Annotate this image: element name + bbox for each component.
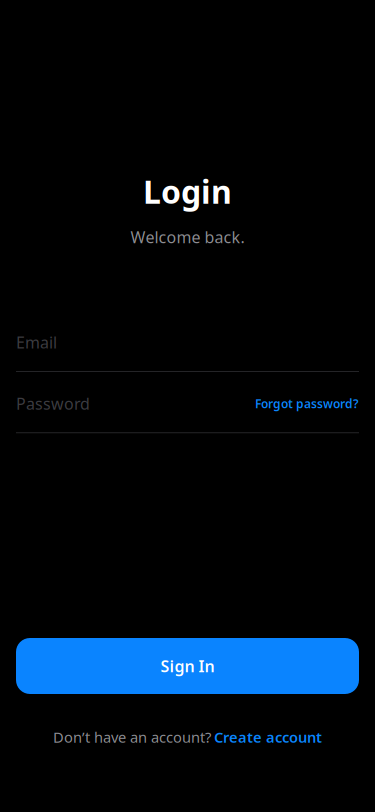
button[interactable]: Password xyxy=(16,393,359,433)
staticText: Welcome back. xyxy=(130,226,244,248)
staticText: Password xyxy=(16,393,90,414)
staticText: Login xyxy=(143,170,232,212)
button[interactable]: Create account xyxy=(214,727,322,747)
button[interactable]: Sign In xyxy=(16,638,359,694)
staticText: Don’t have an account? xyxy=(53,727,211,747)
staticText: Forgot password? xyxy=(255,396,359,411)
staticText: Create account xyxy=(214,727,322,747)
staticText: Email xyxy=(16,332,57,353)
button[interactable]: Email xyxy=(16,332,359,372)
staticText: Sign In xyxy=(160,655,214,677)
